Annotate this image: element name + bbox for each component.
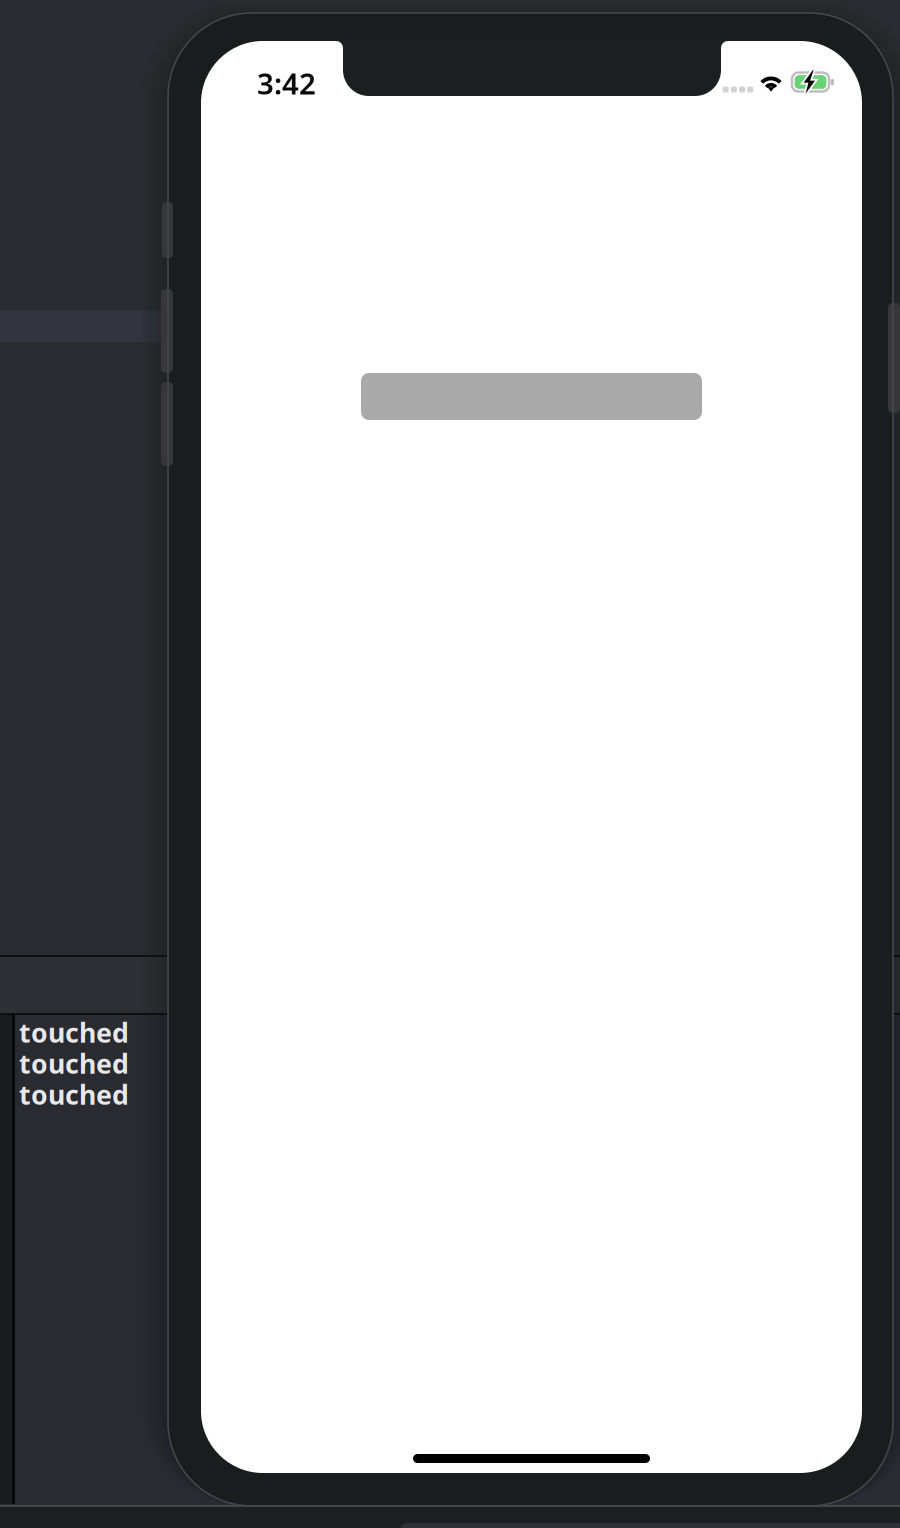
staticText: touched [19, 1077, 129, 1112]
staticText: 3:42 [257, 63, 316, 102]
button[interactable]: Tap target [361, 373, 702, 420]
staticText: touched [19, 1015, 129, 1050]
staticText: touched [19, 1046, 129, 1081]
